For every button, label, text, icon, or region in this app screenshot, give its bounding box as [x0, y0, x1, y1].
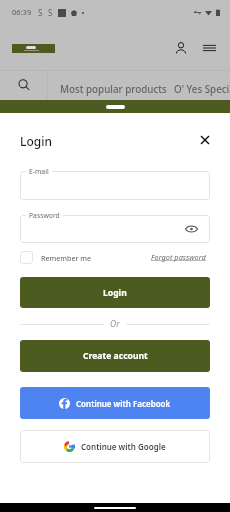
button[interactable]: Login [20, 277, 210, 308]
button[interactable]: Forgot password [151, 252, 206, 262]
staticText: Continue with Facebook [76, 398, 171, 409]
button[interactable]: Menu [200, 39, 218, 57]
staticText: O' Yes Specia [174, 83, 230, 96]
button[interactable]: Most popular products [60, 83, 167, 96]
button[interactable]: Brand logo [12, 44, 55, 53]
button[interactable]: Close [193, 128, 216, 151]
button[interactable]: Continue with Google [20, 430, 210, 463]
staticText: Password [29, 211, 60, 220]
button[interactable] [20, 215, 210, 243]
staticText: 06:39 [12, 7, 32, 17]
staticText: Login [20, 133, 52, 149]
button[interactable]: Account [172, 39, 190, 57]
staticText: Continue with Google [81, 441, 166, 452]
button[interactable] [20, 171, 210, 200]
staticText: E-mail [29, 167, 49, 176]
button[interactable]: Remember me [20, 251, 92, 264]
staticText: Remember me [41, 253, 92, 263]
button[interactable]: Search [0, 70, 47, 100]
staticText: S [48, 7, 53, 18]
staticText: Or [110, 318, 120, 330]
staticText: Most popular products [60, 83, 167, 96]
button[interactable]: Show password [183, 221, 199, 237]
button[interactable]: Continue with Facebook [20, 387, 210, 419]
staticText: Forgot password [151, 252, 206, 262]
staticText: S [38, 7, 43, 18]
staticText: Create account [83, 350, 148, 362]
button[interactable]: Create account [20, 340, 210, 372]
staticText: Login [103, 287, 127, 299]
button[interactable]: O' Yes Specia [174, 83, 230, 96]
